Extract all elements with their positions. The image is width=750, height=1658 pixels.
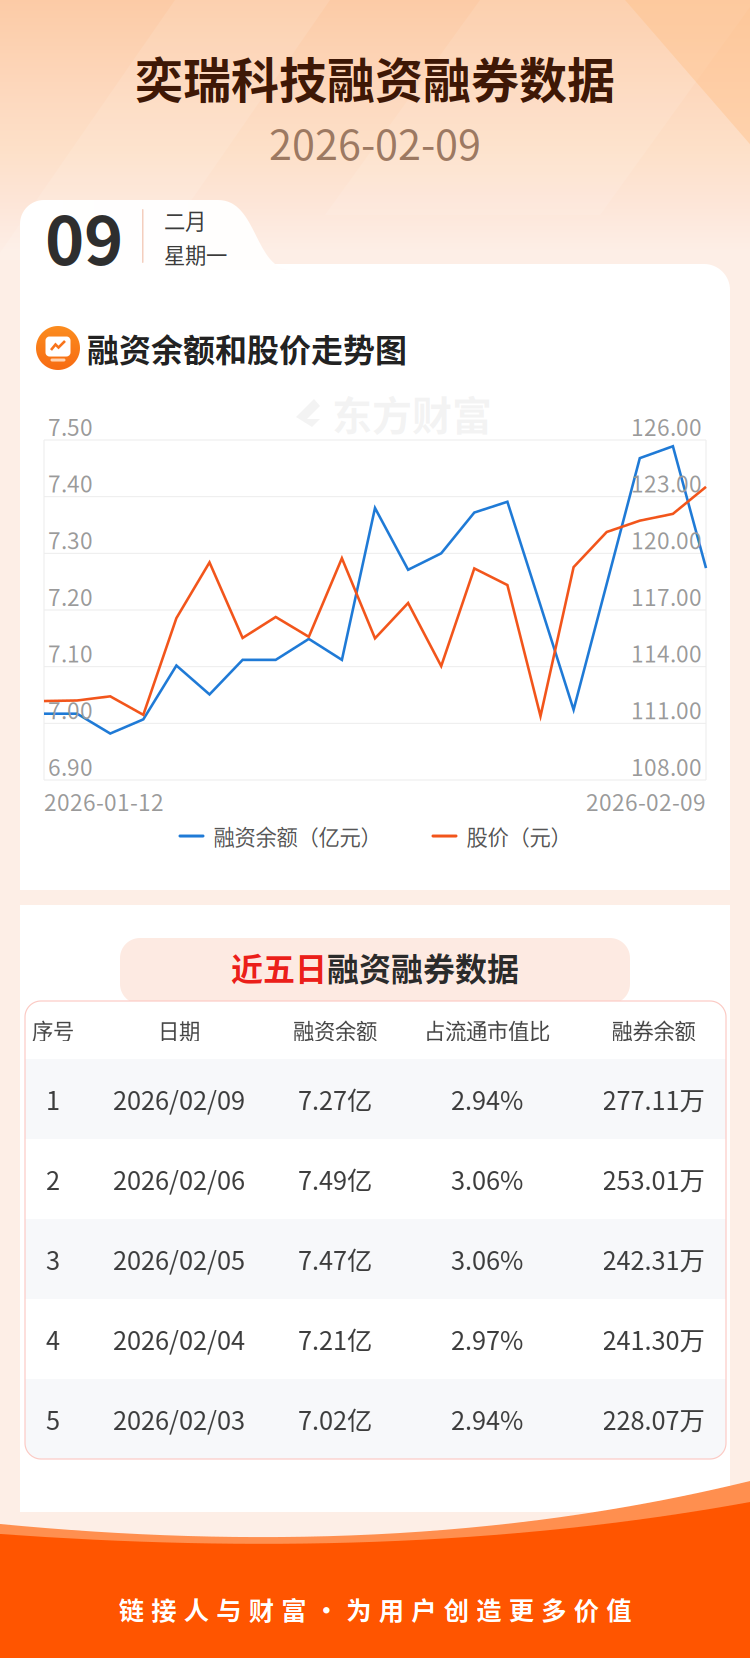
staticText: 融资余额（亿元） [213,821,381,851]
staticText: 为 [346,1591,371,1627]
staticText: 用 [379,1591,404,1627]
staticText: 2026-02-09 [586,785,706,817]
staticText: 277.11万 [602,1081,704,1117]
staticText: 融资融券数据 [327,944,519,990]
staticText: 户 [411,1591,436,1627]
staticText: 二月 [164,205,206,235]
staticText: 253.01万 [602,1161,704,1197]
staticText: 2026/02/09 [113,1081,245,1117]
staticText: 价 [574,1591,599,1627]
staticText: 228.07万 [602,1401,704,1437]
staticText: 财 [249,1591,274,1627]
staticText: 占流通市值比 [424,1015,550,1045]
staticText: 融券余额 [611,1015,695,1045]
staticText: 4 [46,1321,60,1357]
staticText: 2026/02/04 [113,1321,245,1357]
staticText: 7.40 [48,466,93,499]
staticText: 241.30万 [602,1321,704,1357]
staticText: 值 [606,1591,631,1627]
staticText: 6.90 [48,750,93,782]
staticText: 7.00 [48,693,93,726]
staticText: 7.02亿 [298,1401,372,1437]
staticText: 日期 [158,1015,200,1045]
staticText: 2.97% [451,1321,523,1357]
staticText: 多 [541,1591,566,1627]
staticText: 造 [476,1591,501,1627]
staticText: 2026-02-09 [269,112,481,172]
staticText: 117.00 [631,580,702,612]
staticText: 09 [45,188,123,284]
staticText: 与 [216,1591,241,1627]
staticText: · [314,1591,339,1627]
staticText: 123.00 [631,466,702,499]
staticText: 108.00 [631,750,702,782]
staticText: 5 [46,1401,60,1437]
staticText: 富 [281,1591,306,1627]
staticText: 更 [509,1591,534,1627]
staticText: 242.31万 [602,1241,704,1277]
staticText: 2.94% [451,1401,523,1437]
staticText: 融资余额 [293,1015,377,1045]
staticText: 2.94% [451,1081,523,1117]
staticText: 7.20 [48,580,93,612]
staticText: 2026/02/05 [113,1241,245,1277]
staticText: 股价（元） [466,821,571,851]
staticText: 2 [46,1161,60,1197]
staticText: 星期一 [164,239,227,269]
staticText: 接 [151,1591,176,1627]
staticText: 链 [119,1591,144,1627]
staticText: 7.30 [48,523,93,556]
staticText: 111.00 [631,693,702,726]
staticText: 东方财富 [332,1293,492,1351]
staticText: 126.00 [631,410,702,442]
staticText: 7.47亿 [298,1241,372,1277]
staticText: 7.50 [48,410,93,442]
staticText: 7.49亿 [298,1161,372,1197]
staticText: 创 [444,1591,469,1627]
staticText: 7.27亿 [298,1081,372,1117]
staticText: 近五日 [231,944,327,990]
staticText: 奕瑞科技融资融券数据 [135,42,615,112]
staticText: 3.06% [451,1161,523,1197]
staticText: 2026/02/03 [113,1401,245,1437]
staticText: 114.00 [631,636,702,669]
staticText: 3 [46,1241,60,1277]
staticText: 7.10 [48,636,93,669]
staticText: 2026/02/06 [113,1161,245,1197]
staticText: 东方财富 [332,384,492,442]
staticText: 序号 [32,1015,74,1045]
staticText: 2026-01-12 [44,785,164,817]
staticText: 人 [184,1591,209,1627]
staticText: 融资余额和股价走势图 [87,325,407,371]
staticText: 3.06% [451,1241,523,1277]
staticText: 7.21亿 [298,1321,372,1357]
staticText: 1 [46,1081,60,1117]
staticText: 120.00 [631,523,702,556]
